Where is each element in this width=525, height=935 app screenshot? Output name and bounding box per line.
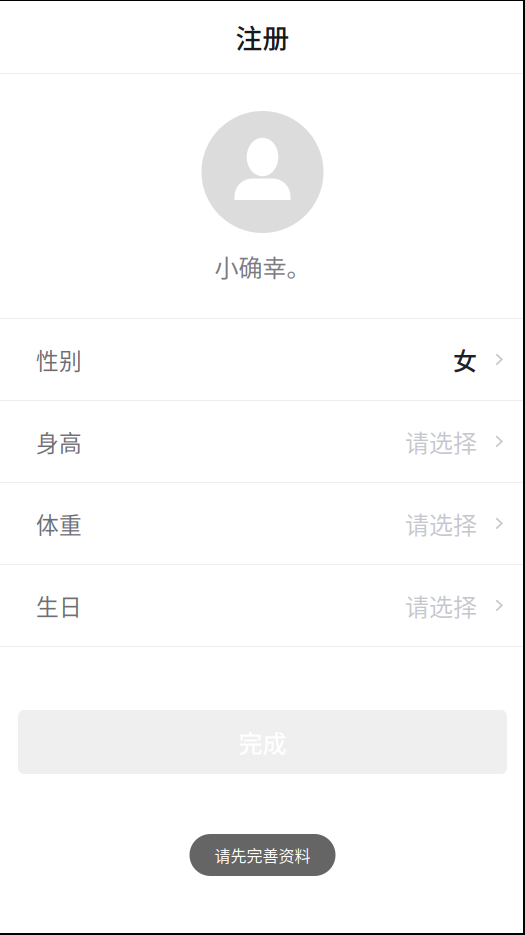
button[interactable]: 生日 — [0, 565, 525, 646]
staticText: 女 — [453, 342, 477, 377]
staticText: 完成 — [238, 725, 286, 759]
staticText: 身高 — [36, 425, 82, 458]
staticText: 小确幸。 — [214, 249, 310, 284]
staticText: 请选择 — [405, 588, 477, 623]
staticText: 请选择 — [405, 506, 477, 541]
staticText: 体重 — [36, 507, 82, 540]
staticText: 请选择 — [405, 424, 477, 459]
staticText: 请先完善资料 — [214, 843, 310, 867]
button[interactable]: Change profile photo — [201, 111, 323, 233]
staticText: 生日 — [36, 589, 82, 622]
staticText: 注册 — [235, 17, 289, 56]
button[interactable]: 性别 — [0, 319, 525, 400]
button[interactable]: 身高 — [0, 401, 525, 482]
staticText: 性别 — [36, 343, 82, 376]
button[interactable]: 体重 — [0, 483, 525, 564]
